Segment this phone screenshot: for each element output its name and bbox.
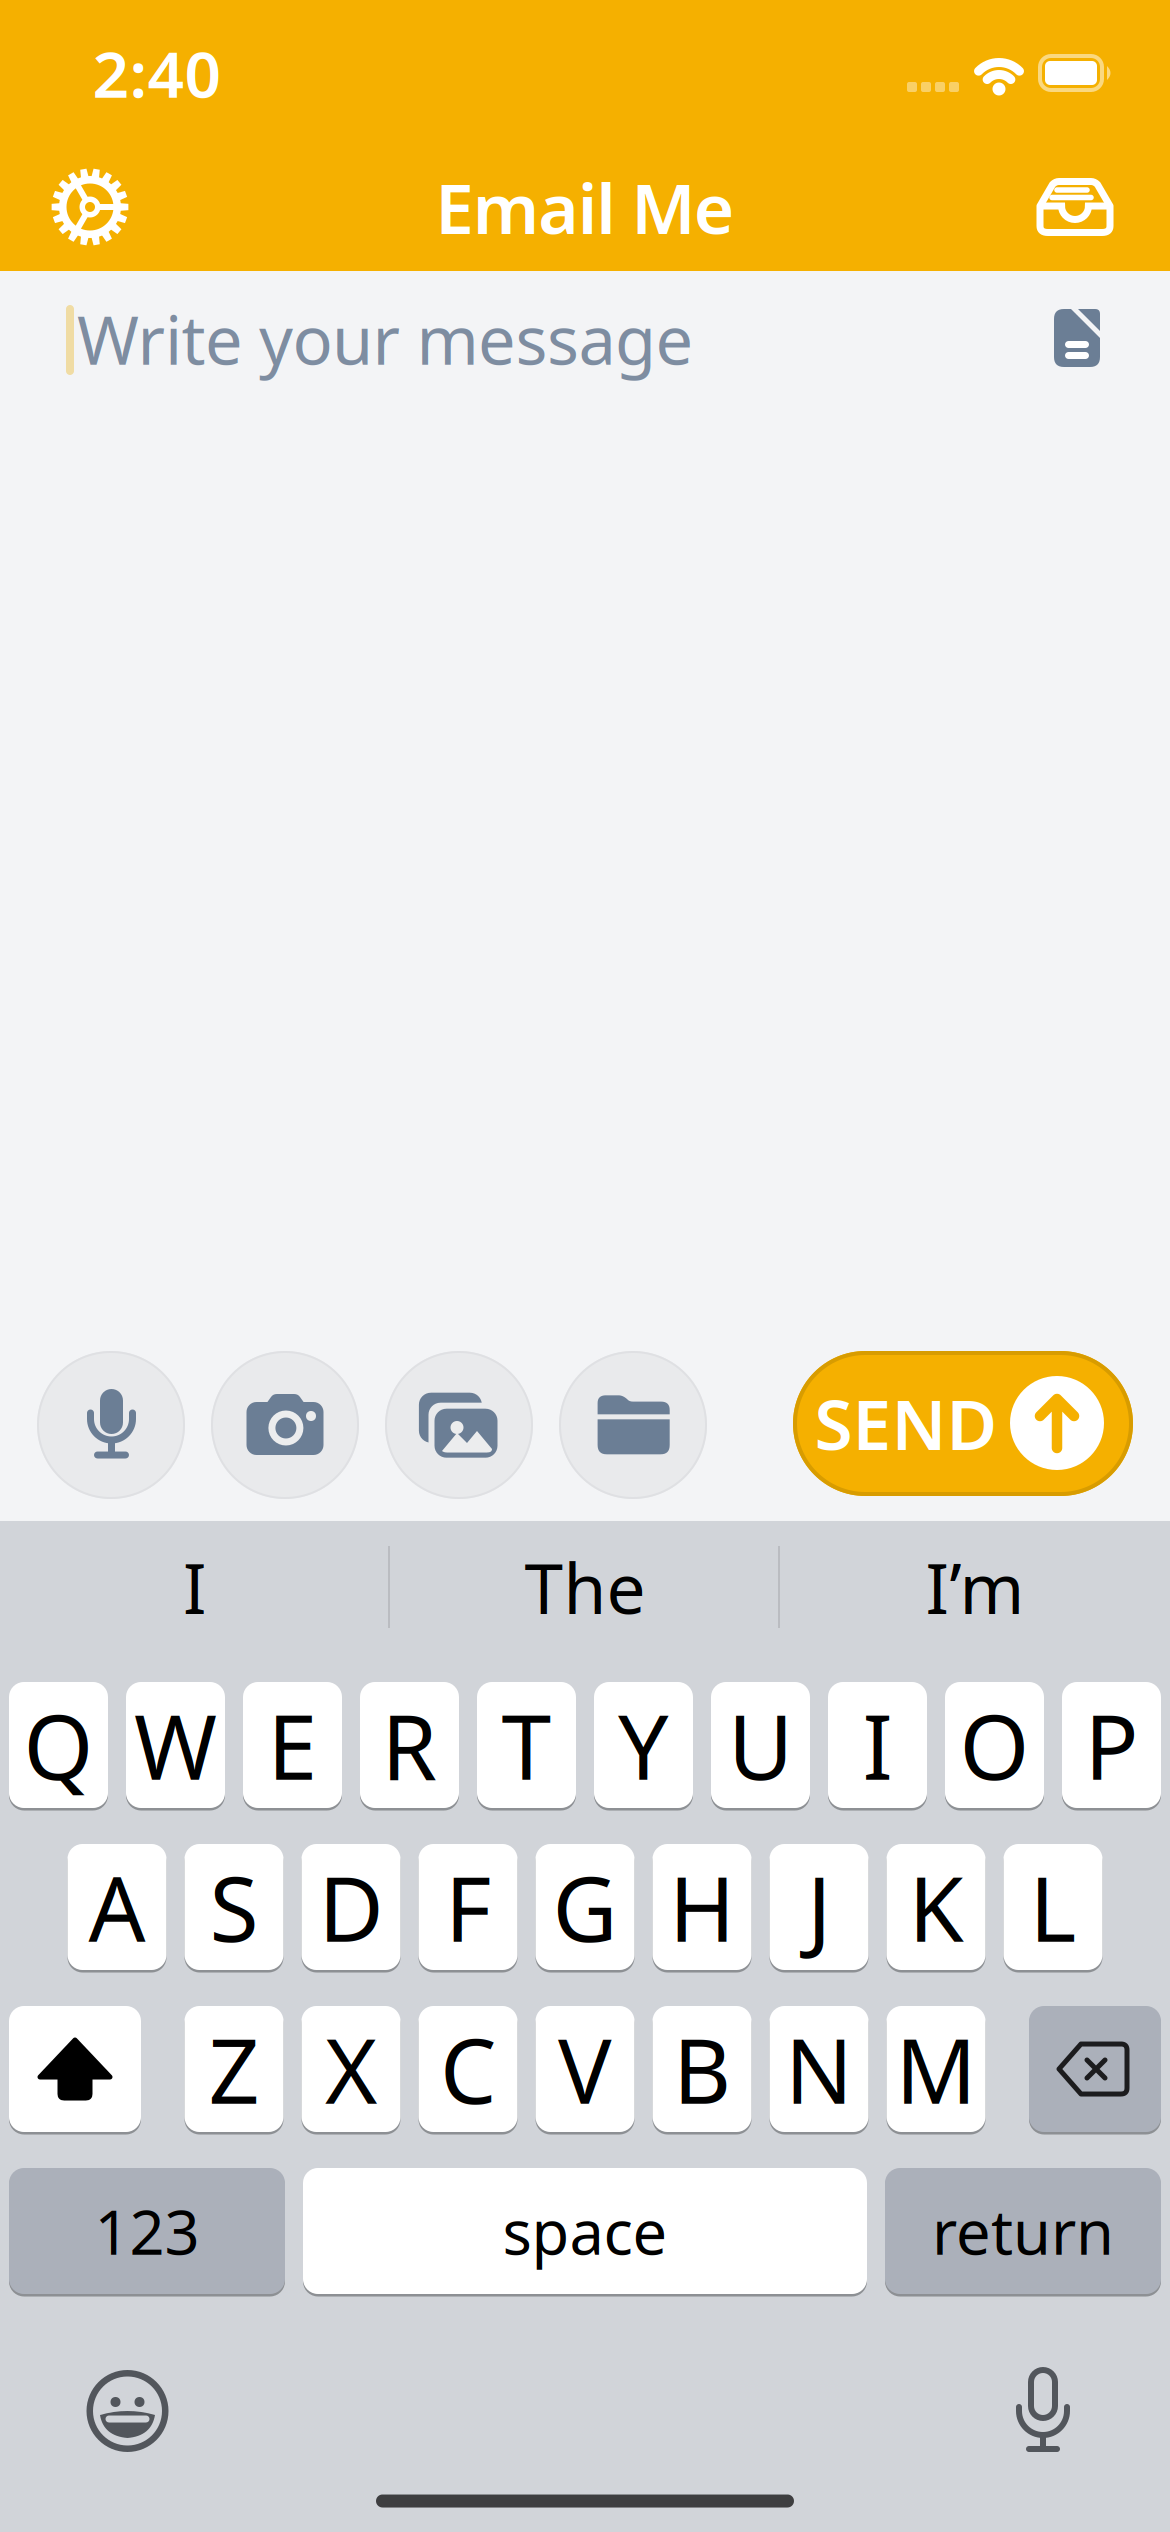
staticText: Z: [208, 2010, 259, 2128]
staticText: N: [785, 2010, 853, 2128]
staticText: The: [524, 1541, 645, 1633]
staticText: O: [959, 1686, 1029, 1804]
staticText: M: [895, 2010, 976, 2128]
staticText: I’m: [925, 1541, 1024, 1633]
staticText: A: [88, 1848, 145, 1966]
staticText: U: [728, 1686, 793, 1804]
staticText: R: [381, 1686, 437, 1804]
staticText: E: [267, 1686, 317, 1804]
staticText: I: [183, 1541, 207, 1633]
staticText: D: [318, 1848, 383, 1966]
staticText: Write your message: [77, 295, 693, 383]
staticText: 2:40: [92, 30, 221, 115]
staticText: K: [908, 1848, 963, 1966]
staticText: S: [209, 1848, 258, 1966]
staticText: L: [1029, 1848, 1076, 1966]
staticText: W: [134, 1686, 217, 1804]
staticText: F: [445, 1848, 491, 1966]
staticText: 123: [94, 2190, 199, 2272]
staticText: Email Me: [435, 161, 735, 253]
staticText: V: [558, 2010, 612, 2128]
staticText: P: [1084, 1686, 1138, 1804]
staticText: Q: [23, 1686, 93, 1804]
staticText: return: [932, 2190, 1114, 2272]
staticText: B: [673, 2010, 731, 2128]
staticText: space: [502, 2190, 667, 2272]
staticText: H: [669, 1848, 735, 1966]
staticText: G: [552, 1848, 617, 1966]
staticText: Y: [618, 1686, 669, 1804]
staticText: J: [807, 1848, 831, 1966]
staticText: I: [862, 1686, 892, 1804]
staticText: SEND: [814, 1377, 997, 1469]
staticText: C: [440, 2010, 496, 2128]
staticText: X: [325, 2010, 377, 2128]
staticText: T: [501, 1686, 551, 1804]
